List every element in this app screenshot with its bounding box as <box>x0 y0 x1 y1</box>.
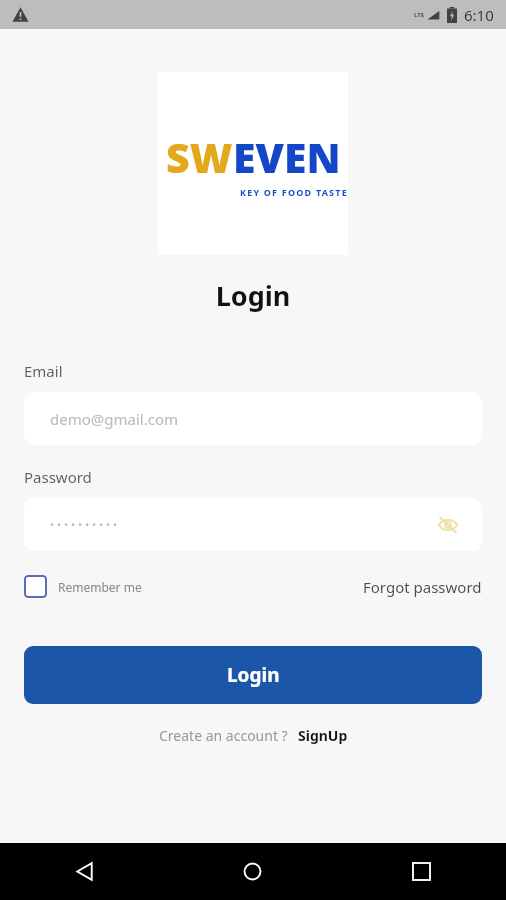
staticText: Password <box>24 467 92 487</box>
button[interactable]: Remember me <box>24 575 142 598</box>
button[interactable]: Recent apps <box>337 843 506 900</box>
staticText: EVEN <box>233 129 341 185</box>
staticText: Login <box>0 277 506 314</box>
button[interactable]: Login <box>24 646 482 704</box>
staticText: Remember me <box>58 579 142 595</box>
staticText: Email <box>24 361 63 381</box>
button[interactable]: Home <box>168 843 337 900</box>
staticText: • • • • • • • • • • <box>50 517 118 532</box>
staticText: KEY OF FOOD TASTE <box>240 186 348 198</box>
button[interactable]: SignUp <box>298 726 348 745</box>
staticText: demo@gmail.com <box>50 409 178 429</box>
staticText: 6:10 <box>464 5 494 25</box>
button[interactable]: demo@gmail.com <box>24 392 482 445</box>
staticText: Login <box>227 662 280 688</box>
button[interactable]: Back <box>0 843 168 900</box>
button[interactable]: • • • • • • • • • • <box>24 498 482 551</box>
button[interactable]: Forgot password <box>363 577 482 597</box>
staticText: SW <box>166 129 233 185</box>
staticText: Create an account ? <box>159 726 288 745</box>
button[interactable]: Show password <box>434 511 462 539</box>
staticText: LTE <box>414 11 425 19</box>
